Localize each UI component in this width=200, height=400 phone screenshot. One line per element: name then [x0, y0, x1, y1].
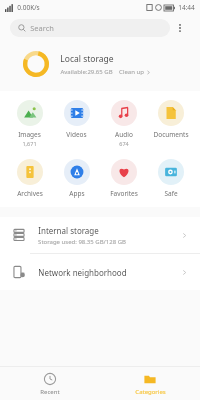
button[interactable]: Local storage — [0, 41, 200, 87]
staticText: 0.00K/s — [17, 3, 40, 12]
staticText: Local storage — [60, 53, 114, 65]
button[interactable]: Apps — [53, 156, 100, 201]
staticText: Archives — [17, 189, 43, 198]
button[interactable]: Documents — [147, 97, 194, 142]
button[interactable]: More options — [170, 18, 190, 38]
button[interactable]: Archives — [6, 156, 53, 201]
staticText: Categories — [135, 388, 166, 396]
staticText: Apps — [69, 189, 85, 198]
button[interactable]: Network neighborhood — [0, 254, 200, 290]
button[interactable]: Recent — [0, 369, 100, 399]
staticText: Recent — [40, 388, 60, 396]
staticText: Videos — [66, 130, 87, 139]
staticText: Favorites — [110, 189, 138, 198]
button[interactable]: Videos — [53, 97, 100, 142]
staticText: Internal storage — [38, 225, 99, 236]
staticText: Clean up — [119, 68, 144, 76]
staticText: 14:44 — [178, 3, 195, 12]
staticText: Network neighborhood — [38, 267, 127, 278]
button[interactable]: Images — [6, 97, 53, 150]
staticText: Search — [30, 23, 54, 33]
staticText: Available:29.65 GB — [60, 68, 113, 76]
button[interactable]: Categories — [100, 369, 200, 399]
staticText: Storage used: 98.35 GB/128 GB — [38, 238, 126, 246]
staticText: Audio — [115, 130, 133, 139]
staticText: 674 — [119, 140, 129, 147]
staticText: 1,671 — [22, 140, 37, 147]
button[interactable]: Internal storage — [0, 217, 200, 253]
staticText: Safe — [164, 189, 178, 198]
button[interactable]: Audio — [100, 97, 147, 150]
button[interactable]: Search — [10, 19, 170, 37]
staticText: Documents — [153, 130, 189, 139]
staticText: Images — [18, 130, 41, 139]
button[interactable]: Favorites — [100, 156, 147, 201]
button[interactable]: Safe — [147, 156, 194, 201]
